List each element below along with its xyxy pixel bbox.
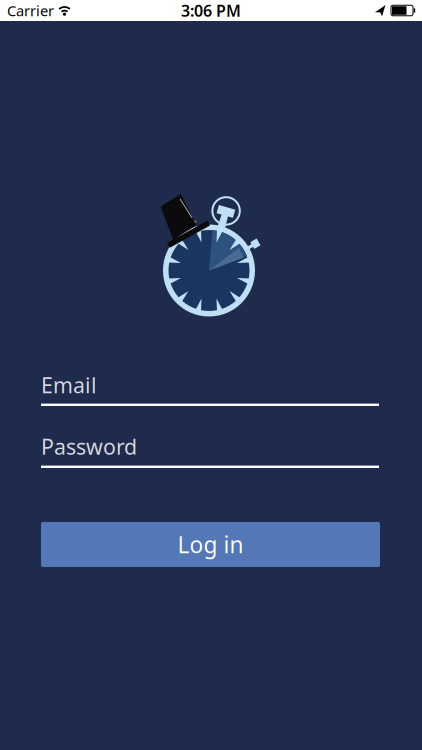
button[interactable]: Password xyxy=(41,421,379,469)
staticText: Log in xyxy=(177,529,243,559)
button[interactable]: Email xyxy=(41,359,379,407)
staticText: Carrier xyxy=(7,1,54,20)
button[interactable]: Log in xyxy=(41,522,380,567)
staticText: 3:06 PM xyxy=(181,0,241,21)
staticText: Email xyxy=(41,371,97,399)
staticText: Password xyxy=(41,432,137,461)
